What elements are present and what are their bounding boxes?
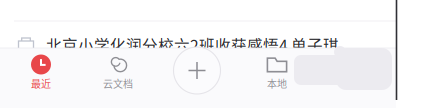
staticText: 北京小学化润分校六2班收获感悟4 单子琪 <box>46 34 339 56</box>
button[interactable]: 本地 <box>237 48 317 92</box>
button[interactable]: 应用 <box>316 48 396 92</box>
staticText: 云文档 <box>103 76 133 91</box>
staticText: 最近 <box>31 76 51 91</box>
staticText: 本地 <box>267 76 287 91</box>
button[interactable]: 云文档 <box>78 48 158 92</box>
staticText: 应用 <box>346 76 366 91</box>
button[interactable]: 最近 <box>1 48 81 92</box>
button[interactable]: New document <box>173 47 220 94</box>
